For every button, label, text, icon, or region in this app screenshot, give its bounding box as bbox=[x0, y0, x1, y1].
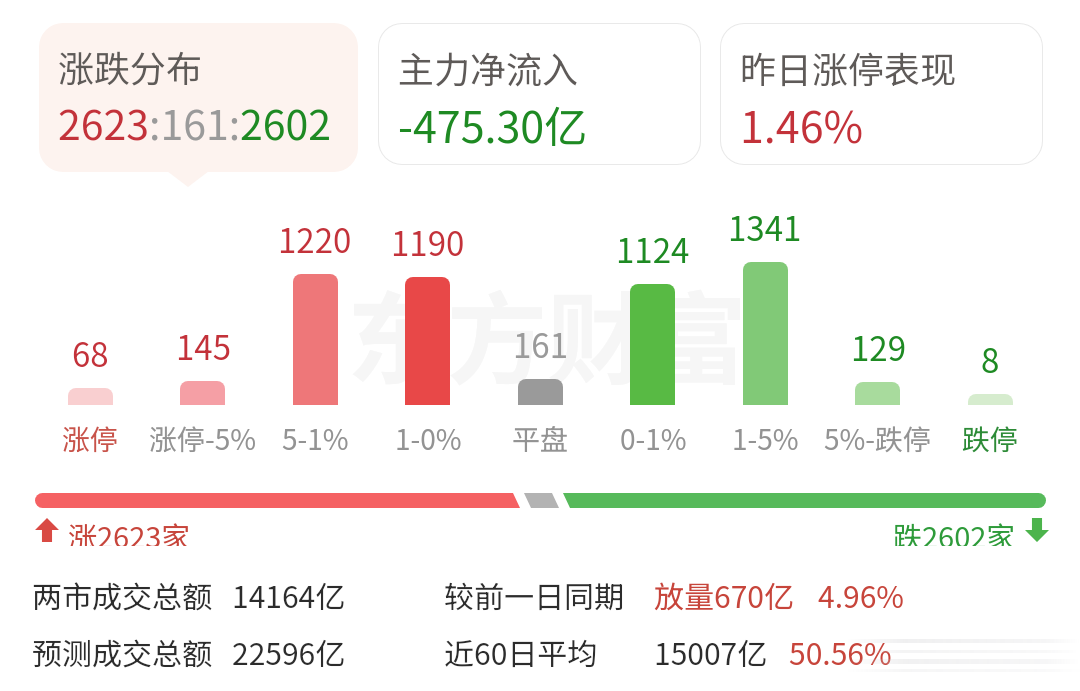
button[interactable]: 5%-跌停 bbox=[808, 418, 948, 460]
staticText: 2623:161:2602 bbox=[58, 92, 332, 151]
staticText: 跌2602家 bbox=[893, 514, 1016, 546]
button[interactable]: 涨停-5% bbox=[133, 418, 273, 460]
staticText: 较前一日同期 bbox=[444, 573, 624, 616]
button[interactable]: 1-0% bbox=[358, 418, 498, 460]
staticText: 近60日平均 bbox=[444, 630, 598, 673]
button[interactable]: 5-1% bbox=[245, 418, 385, 460]
staticText: 22596亿 bbox=[232, 630, 346, 673]
staticText: 4.96% bbox=[818, 573, 904, 616]
staticText: 主力净流入 bbox=[398, 41, 579, 93]
button[interactable]: 0-1% bbox=[583, 418, 723, 460]
staticText: 145 bbox=[176, 322, 231, 367]
button[interactable]: 主力净流入 bbox=[379, 24, 700, 164]
staticText: 涨停-5% bbox=[149, 418, 257, 459]
staticText: 50.56% bbox=[789, 630, 892, 673]
staticText: 5-1% bbox=[282, 418, 349, 459]
staticText: 平盘 bbox=[512, 418, 569, 459]
staticText: 预测成交总额 bbox=[32, 630, 212, 673]
staticText: 1-5% bbox=[732, 418, 799, 459]
staticText: 两市成交总额 bbox=[32, 573, 212, 616]
staticText: 68 bbox=[72, 329, 109, 374]
button[interactable]: 昨日涨停表现 bbox=[721, 24, 1042, 164]
staticText: 8 bbox=[981, 335, 1000, 380]
staticText: 涨2623家 bbox=[68, 514, 191, 546]
staticText: -475.30亿 bbox=[398, 93, 588, 155]
staticText: 14164亿 bbox=[232, 573, 346, 616]
staticText: 1-0% bbox=[395, 418, 462, 459]
staticText: 0-1% bbox=[620, 418, 687, 459]
staticText: 161 bbox=[513, 320, 568, 365]
staticText: 1220 bbox=[278, 215, 352, 260]
other: Declining stocks bbox=[1025, 518, 1049, 542]
button[interactable]: 涨停 bbox=[20, 418, 160, 460]
staticText: 东方财富 bbox=[347, 260, 747, 405]
button[interactable]: 跌停 bbox=[920, 418, 1060, 460]
staticText: 129 bbox=[851, 323, 906, 368]
other: Advancing stocks bbox=[35, 518, 59, 542]
staticText: 1341 bbox=[728, 203, 802, 248]
staticText: 1124 bbox=[616, 225, 690, 270]
button[interactable]: Advancing stocks bbox=[35, 514, 191, 546]
staticText: 涨跌分布 bbox=[58, 40, 203, 92]
staticText: 15007亿 bbox=[654, 630, 768, 673]
button[interactable]: 1-5% bbox=[695, 418, 835, 460]
staticText: 涨停 bbox=[62, 418, 119, 459]
staticText: 昨日涨停表现 bbox=[740, 41, 957, 93]
staticText: 放量670亿 bbox=[654, 573, 794, 616]
button[interactable]: 涨跌分布 bbox=[39, 23, 358, 172]
staticText: 跌停 bbox=[962, 418, 1019, 459]
staticText: 5%-跌停 bbox=[824, 418, 932, 459]
staticText: 1.46% bbox=[740, 93, 864, 155]
staticText: 1190 bbox=[391, 218, 465, 263]
button[interactable]: 平盘 bbox=[470, 418, 610, 460]
button[interactable]: 跌2602家 bbox=[893, 514, 1049, 546]
